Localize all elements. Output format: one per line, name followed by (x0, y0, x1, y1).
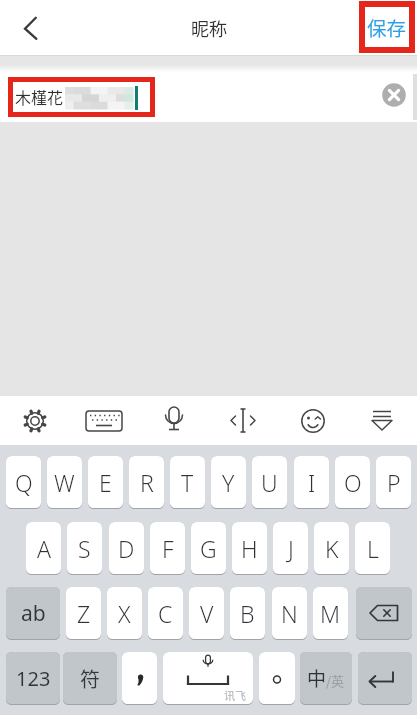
button[interactable]: Q (6, 456, 41, 509)
button[interactable]: 123 (6, 652, 60, 705)
button[interactable] (365, 404, 399, 438)
button[interactable]: 保存 (359, 1, 415, 53)
staticText: K (325, 533, 339, 564)
button[interactable] (18, 14, 44, 42)
button[interactable]: M (313, 587, 348, 640)
button[interactable]: 木槿花 (0, 72, 417, 122)
staticText: Z (77, 598, 91, 629)
button[interactable]: D (109, 522, 144, 575)
button[interactable] (382, 83, 406, 107)
button[interactable]: C (148, 587, 183, 640)
button[interactable]: 讯飞 (163, 652, 253, 705)
button[interactable]: S (67, 522, 102, 575)
staticText: 保存 (367, 13, 407, 41)
button[interactable] (356, 587, 412, 640)
staticText: Q (15, 467, 33, 498)
staticText: 讯飞 (224, 687, 246, 703)
staticText: I (308, 467, 316, 498)
button[interactable]: F (150, 522, 185, 575)
staticText: W (54, 467, 75, 498)
staticText: 中/英 (307, 664, 345, 692)
button[interactable]: N (272, 587, 307, 640)
button[interactable] (259, 652, 295, 705)
button[interactable]: J (273, 522, 308, 575)
button[interactable]: 符 (63, 652, 117, 705)
staticText: B (240, 598, 255, 629)
button[interactable]: B (230, 587, 265, 640)
staticText: 123 (16, 665, 51, 692)
button[interactable]: 中/英 (300, 652, 352, 705)
button[interactable]: G (191, 522, 226, 575)
button[interactable] (122, 652, 157, 705)
staticText: A (37, 533, 51, 564)
button[interactable]: P (376, 456, 411, 509)
staticText: ab (21, 599, 46, 628)
staticText: J (288, 533, 294, 564)
staticText: U (261, 467, 278, 498)
button[interactable]: V (189, 587, 224, 640)
button[interactable]: Y (211, 456, 246, 509)
button[interactable]: A (26, 522, 61, 575)
staticText: 昵称 (191, 15, 227, 41)
staticText: L (367, 533, 379, 564)
staticText: 符 (80, 664, 100, 693)
button[interactable]: E (88, 456, 123, 509)
staticText: E (99, 467, 112, 498)
button[interactable] (358, 652, 412, 705)
button[interactable]: ab (6, 587, 60, 640)
staticText: R (140, 467, 154, 498)
button[interactable]: Z (66, 587, 101, 640)
button[interactable] (226, 404, 260, 438)
button[interactable] (157, 404, 191, 438)
staticText: C (158, 598, 173, 629)
staticText: D (118, 533, 135, 564)
staticText: P (387, 467, 401, 498)
staticText: Y (222, 467, 235, 498)
button[interactable]: I (294, 456, 329, 509)
button[interactable]: L (355, 522, 390, 575)
staticText: 木槿花 (15, 85, 64, 108)
staticText: F (162, 533, 174, 564)
button[interactable]: W (47, 456, 82, 509)
staticText: H (241, 533, 258, 564)
staticText: X (118, 598, 131, 629)
button[interactable]: U (252, 456, 287, 509)
button[interactable] (296, 404, 330, 438)
button[interactable]: T (170, 456, 205, 509)
staticText: O (344, 467, 362, 498)
staticText: G (200, 533, 217, 564)
button[interactable] (87, 404, 121, 438)
button[interactable] (18, 404, 52, 438)
staticText: N (281, 598, 298, 629)
staticText: T (181, 467, 194, 498)
button[interactable]: K (314, 522, 349, 575)
button[interactable]: H (232, 522, 267, 575)
button[interactable]: X (107, 587, 142, 640)
button[interactable]: R (129, 456, 164, 509)
staticText: S (78, 533, 91, 564)
button[interactable]: O (335, 456, 370, 509)
staticText: V (200, 598, 214, 629)
staticText: M (320, 598, 341, 629)
